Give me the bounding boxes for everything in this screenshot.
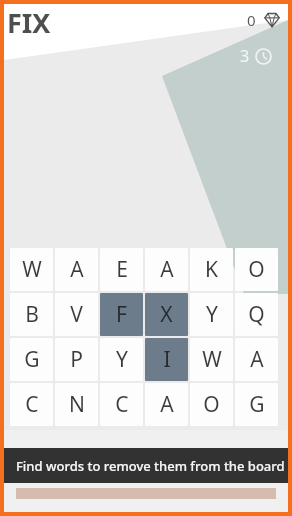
button[interactable]: Moves remaining xyxy=(240,45,272,67)
button[interactable]: Gems xyxy=(247,10,281,30)
button[interactable]: Y xyxy=(190,293,233,336)
staticText: 0 xyxy=(247,10,256,30)
staticText: Y xyxy=(206,300,218,329)
staticText: E xyxy=(116,255,128,284)
staticText: A xyxy=(160,390,174,419)
button[interactable]: I xyxy=(145,338,188,381)
staticText: Find words to remove them from the board xyxy=(16,457,285,475)
button[interactable]: V xyxy=(55,293,98,336)
staticText: X xyxy=(160,300,173,329)
button[interactable]: C xyxy=(10,383,53,426)
button[interactable]: A xyxy=(145,248,188,291)
staticText: O xyxy=(248,255,265,284)
staticText: A xyxy=(250,345,264,374)
button[interactable]: C xyxy=(100,383,143,426)
button[interactable]: G xyxy=(10,338,53,381)
staticText: N xyxy=(69,390,85,419)
staticText: G xyxy=(24,345,40,374)
button[interactable]: Y xyxy=(100,338,143,381)
button[interactable]: N xyxy=(55,383,98,426)
staticText: G xyxy=(249,390,265,419)
button[interactable]: W xyxy=(10,248,53,291)
staticText: K xyxy=(205,255,218,284)
button[interactable]: W xyxy=(190,338,233,381)
button[interactable]: O xyxy=(235,248,278,291)
staticText: W xyxy=(202,345,222,374)
button[interactable]: Q xyxy=(235,293,278,336)
button[interactable]: X xyxy=(145,293,188,336)
staticText: Y xyxy=(116,345,128,374)
button[interactable]: F xyxy=(100,293,143,336)
staticText: FIX xyxy=(7,4,51,36)
button[interactable]: A xyxy=(235,338,278,381)
button[interactable]: P xyxy=(55,338,98,381)
button[interactable]: FIX xyxy=(7,4,51,36)
staticText: Q xyxy=(248,300,265,329)
staticText: A xyxy=(70,255,84,284)
button[interactable]: B xyxy=(10,293,53,336)
staticText: I xyxy=(163,345,171,374)
button[interactable]: E xyxy=(100,248,143,291)
staticText: P xyxy=(70,345,83,374)
button[interactable]: A xyxy=(145,383,188,426)
staticText: C xyxy=(25,390,39,419)
staticText: O xyxy=(203,390,220,419)
staticText: B xyxy=(25,300,39,329)
staticText: W xyxy=(22,255,42,284)
button[interactable]: Find words to remove them from the board xyxy=(4,448,288,483)
staticText: V xyxy=(70,300,83,329)
button[interactable]: O xyxy=(190,383,233,426)
staticText: C xyxy=(115,390,129,419)
button[interactable]: K xyxy=(190,248,233,291)
button[interactable]: G xyxy=(235,383,278,426)
staticText: F xyxy=(116,300,127,329)
staticText: 3 xyxy=(240,45,250,67)
button[interactable]: A xyxy=(55,248,98,291)
staticText: A xyxy=(160,255,174,284)
